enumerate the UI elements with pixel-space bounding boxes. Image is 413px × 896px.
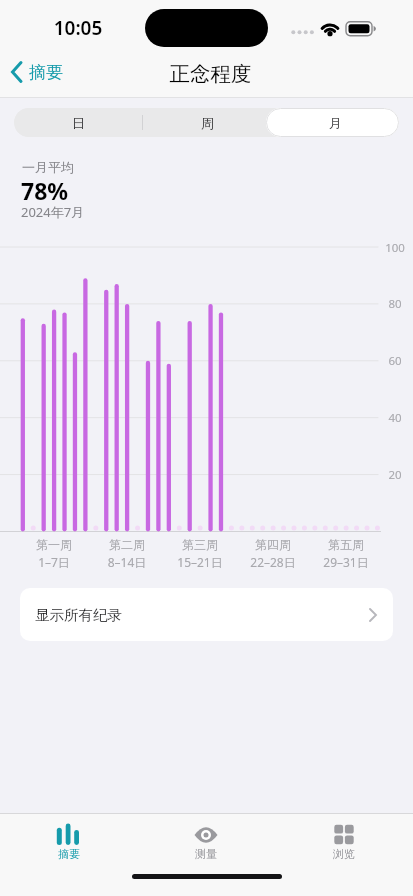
staticText: 20 xyxy=(382,467,408,483)
staticText: 第五周 xyxy=(306,537,386,552)
staticText: 78% xyxy=(21,175,69,206)
staticText: 一月平均 xyxy=(22,159,74,175)
staticText: 2024年7月 xyxy=(21,203,85,221)
staticText: 第四周 xyxy=(233,537,313,552)
staticText: 22–28日 xyxy=(233,554,313,570)
button[interactable]: 摘要 xyxy=(10,58,63,86)
staticText: 月 xyxy=(329,115,342,131)
staticText: 40 xyxy=(382,410,408,426)
button[interactable]: 显示所有纪录 xyxy=(20,588,393,641)
staticText: 第三周 xyxy=(160,537,240,552)
staticText: 100 xyxy=(382,240,408,256)
staticText: 摘要 xyxy=(29,62,63,83)
staticText: 60 xyxy=(382,353,408,369)
staticText: 第一周 xyxy=(14,537,94,552)
button[interactable]: 测量 xyxy=(137,813,275,896)
staticText: 8–14日 xyxy=(87,554,167,570)
staticText: 10:05 xyxy=(42,15,114,41)
staticText: 周 xyxy=(201,115,214,131)
staticText: 摘要 xyxy=(58,847,80,861)
button[interactable]: 日 xyxy=(14,108,143,137)
staticText: 第二周 xyxy=(87,537,167,552)
button[interactable]: 月 xyxy=(271,108,399,137)
staticText: 测量 xyxy=(195,847,217,861)
staticText: 80 xyxy=(382,296,408,312)
staticText: 15–21日 xyxy=(160,554,240,570)
button[interactable] xyxy=(266,108,399,137)
staticText: 1–7日 xyxy=(14,554,94,570)
staticText: 显示所有纪录 xyxy=(35,606,122,624)
staticText: 29–31日 xyxy=(306,554,386,570)
staticText: 日 xyxy=(72,115,85,131)
button[interactable]: 周 xyxy=(143,108,271,137)
staticText: 浏览 xyxy=(333,847,355,861)
button[interactable]: 浏览 xyxy=(275,813,413,896)
staticText: 正念程度 xyxy=(4,61,413,87)
button[interactable]: 摘要 xyxy=(0,813,137,896)
